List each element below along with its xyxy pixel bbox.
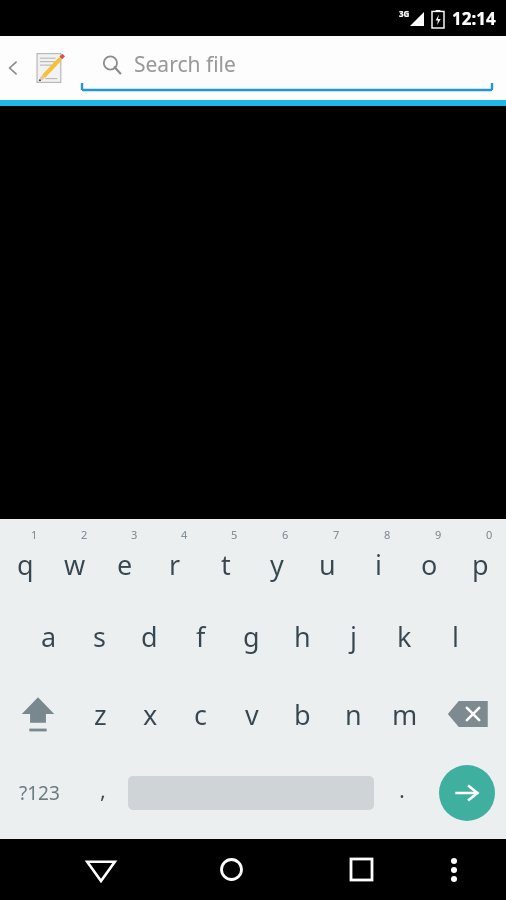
staticText: v [245,696,259,733]
button[interactable]: 0 [455,519,506,597]
staticText: 3 [131,527,138,542]
button[interactable]: g [226,597,277,675]
button[interactable]: Shift [0,675,75,753]
button[interactable]: Edit note [28,46,72,90]
staticText: y [270,546,284,583]
staticText: z [94,696,107,733]
staticText: i [375,546,382,583]
button[interactable]: Space [127,753,375,833]
button[interactable]: Back [0,55,26,81]
button[interactable]: k [379,597,430,675]
button[interactable]: z [75,675,125,753]
staticText: a [41,618,57,655]
staticText: d [141,618,158,655]
staticText: 8 [384,527,391,542]
button[interactable]: b [277,675,328,753]
button[interactable]: s [74,597,124,675]
button[interactable]: x [125,675,175,753]
staticText: ?123 [19,780,60,806]
staticText: q [17,546,34,583]
staticText: g [243,618,260,655]
button[interactable]: 7 [302,519,353,597]
staticText: s [93,618,106,655]
staticText: 2 [81,527,88,542]
button[interactable]: Recent apps [324,839,398,900]
button[interactable]: 2 [50,519,100,597]
staticText: e [117,546,133,583]
staticText: 3G [399,8,410,19]
staticText: o [421,546,438,583]
button[interactable]: Search file [80,40,494,96]
button[interactable]: Back [64,839,138,900]
staticText: Search file [134,50,236,79]
staticText: 6 [282,527,289,542]
button[interactable]: 3 [100,519,150,597]
staticText: p [472,546,489,583]
staticText: w [64,546,86,583]
button[interactable]: h [277,597,328,675]
button[interactable]: Backspace [430,675,506,753]
staticText: n [345,696,362,733]
staticText: b [294,696,311,733]
button[interactable]: j [328,597,379,675]
staticText: x [143,696,158,733]
staticText: k [397,618,412,655]
staticText: c [194,696,207,733]
staticText: 12:14 [452,7,496,30]
staticText: h [294,618,311,655]
button[interactable]: 1 [0,519,50,597]
staticText: m [392,696,418,733]
staticText: f [196,618,206,655]
staticText: u [319,546,336,583]
button[interactable]: a [24,597,74,675]
staticText: 1 [31,527,38,542]
staticText: 0 [486,527,493,542]
button[interactable]: 5 [200,519,251,597]
button[interactable]: f [175,597,226,675]
staticText: r [169,546,181,583]
staticText: t [221,546,231,583]
button[interactable]: n [328,675,379,753]
button[interactable]: 4 [150,519,200,597]
staticText: l [452,618,459,655]
button[interactable]: More options [424,839,484,900]
button[interactable]: m [379,675,430,753]
button[interactable]: c [175,675,226,753]
button[interactable]: v [226,675,277,753]
button[interactable]: ?123 [0,753,79,833]
button[interactable]: , [79,753,127,833]
button[interactable]: 6 [251,519,302,597]
staticText: j [350,618,357,655]
staticText: , [100,774,106,804]
staticText: 9 [435,527,442,542]
staticText: 7 [333,527,340,542]
button[interactable]: . [375,753,428,833]
button[interactable]: d [124,597,175,675]
button[interactable]: Enter [428,753,506,833]
button[interactable]: 8 [353,519,404,597]
button[interactable]: 9 [404,519,455,597]
staticText: . [399,774,405,804]
button[interactable]: Home [194,839,268,900]
button[interactable]: l [430,597,481,675]
staticText: 4 [181,527,188,542]
staticText: 5 [231,527,238,542]
